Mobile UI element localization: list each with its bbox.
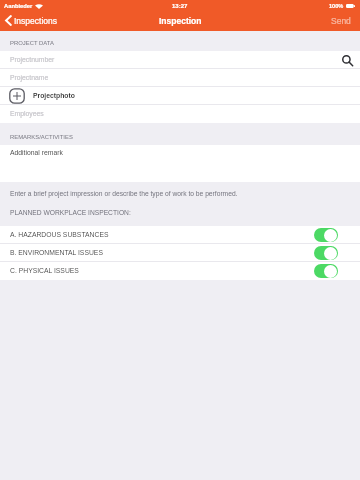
- staticText: PROJECT DATA: [10, 40, 54, 47]
- other: Toggle B. ENVIRONMENTAL ISSUES: [314, 246, 338, 260]
- staticText: REMARKS/ACTIVITIES: [10, 134, 73, 141]
- button[interactable]: Inspections: [0, 13, 65, 30]
- staticText: Projectphoto: [33, 92, 75, 100]
- other: Search: [342, 55, 353, 66]
- staticText: Aanbieder: [4, 3, 33, 9]
- button[interactable]: Projectnumber: [0, 51, 360, 69]
- button[interactable]: A. HAZARDOUS SUBSTANCES: [0, 226, 360, 244]
- other: Toggle C. PHYSICAL ISSUES: [314, 264, 338, 278]
- button[interactable]: Additional remark: [0, 145, 360, 182]
- staticText: Inspection: [159, 16, 202, 25]
- button[interactable]: B. ENVIRONMENTAL ISSUES: [0, 244, 360, 262]
- staticText: Inspections: [14, 16, 57, 25]
- staticText: Additional remark: [10, 149, 63, 157]
- button[interactable]: Employees: [0, 105, 360, 123]
- button[interactable]: Send: [324, 14, 360, 29]
- staticText: Projectname: [10, 74, 49, 82]
- staticText: B. ENVIRONMENTAL ISSUES: [10, 249, 103, 257]
- button[interactable]: Projectphoto: [0, 87, 360, 105]
- staticText: A. HAZARDOUS SUBSTANCES: [10, 231, 109, 239]
- other: Toggle A. HAZARDOUS SUBSTANCES: [314, 228, 338, 242]
- staticText: PLANNED WORKPLACE INSPECTION:: [10, 209, 131, 216]
- button[interactable]: Projectname: [0, 69, 360, 87]
- staticText: 100%: [329, 3, 344, 9]
- staticText: C. PHYSICAL ISSUES: [10, 267, 79, 275]
- staticText: 13:27: [172, 3, 188, 10]
- staticText: Enter a brief project impression or desc…: [10, 190, 238, 197]
- staticText: Projectnumber: [10, 56, 55, 64]
- staticText: Employees: [10, 110, 44, 118]
- button[interactable]: C. PHYSICAL ISSUES: [0, 262, 360, 280]
- staticText: Send: [331, 16, 351, 25]
